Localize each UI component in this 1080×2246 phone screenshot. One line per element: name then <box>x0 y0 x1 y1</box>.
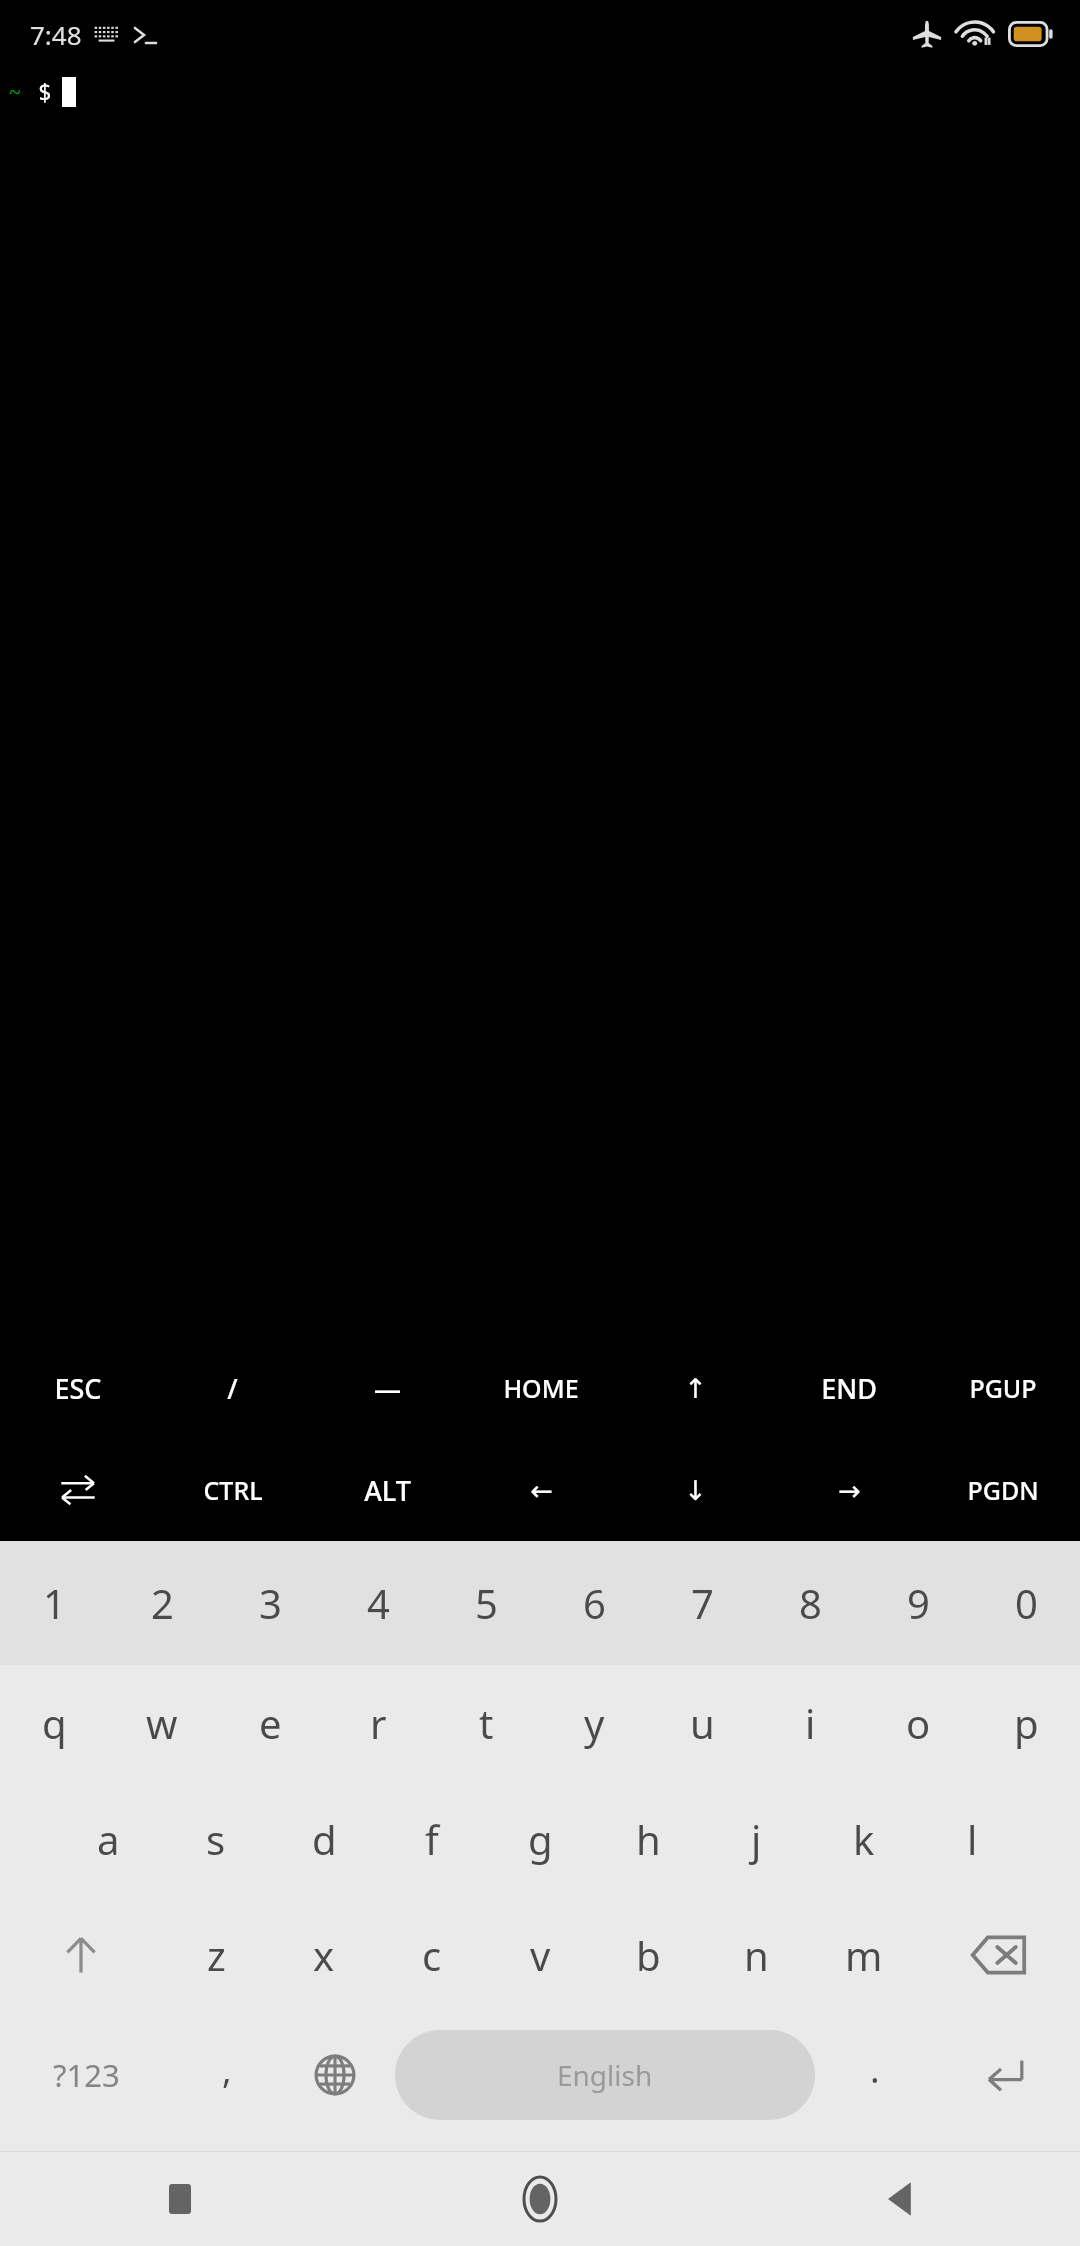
staticText: d <box>312 1812 337 1866</box>
staticText: ← <box>530 1475 553 1506</box>
button[interactable]: y <box>540 1665 648 1781</box>
button[interactable]: u <box>648 1665 756 1781</box>
button[interactable]: n <box>702 1897 810 2013</box>
button[interactable]: 0 <box>972 1541 1080 1665</box>
staticText: 4 <box>367 1576 390 1630</box>
staticText: 9 <box>907 1576 930 1630</box>
button[interactable]: a <box>54 1781 162 1897</box>
button[interactable]: s <box>162 1781 270 1897</box>
button[interactable]: English <box>395 2030 815 2120</box>
staticText: END <box>821 1370 877 1407</box>
button[interactable]: r <box>324 1665 432 1781</box>
button[interactable]: ?123 <box>0 2013 173 2137</box>
button[interactable]: — <box>310 1337 464 1439</box>
button[interactable]: f <box>378 1781 486 1897</box>
other: Tab <box>59 1473 97 1507</box>
button[interactable]: ↓ <box>618 1439 772 1541</box>
button[interactable]: k <box>810 1781 918 1897</box>
button[interactable]: Back <box>720 2152 1080 2246</box>
button[interactable]: 8 <box>756 1541 864 1665</box>
button[interactable]: ← <box>464 1439 618 1541</box>
button[interactable]: ↑ <box>618 1337 772 1439</box>
button[interactable]: 7 <box>648 1541 756 1665</box>
button[interactable]: Change language <box>281 2013 389 2137</box>
staticText: l <box>967 1812 978 1866</box>
staticText: 1 <box>43 1576 66 1630</box>
button[interactable]: 1 <box>0 1541 108 1665</box>
staticText: p <box>1014 1696 1039 1750</box>
button[interactable]: Tab <box>0 1439 155 1541</box>
staticText: u <box>690 1696 715 1750</box>
staticText: PGUP <box>969 1371 1037 1405</box>
button[interactable]: v <box>486 1897 594 2013</box>
button[interactable]: ALT <box>310 1439 464 1541</box>
button[interactable]: i <box>756 1665 864 1781</box>
button[interactable]: j <box>702 1781 810 1897</box>
button[interactable]: . <box>821 2013 929 2137</box>
staticText: 0 <box>1015 1576 1038 1630</box>
button[interactable]: p <box>972 1665 1080 1781</box>
button[interactable]: 2 <box>108 1541 216 1665</box>
staticText: CTRL <box>203 1473 263 1507</box>
button[interactable]: b <box>594 1897 702 2013</box>
staticText: 6 <box>583 1576 606 1630</box>
button[interactable]: → <box>772 1439 926 1541</box>
staticText: 7:48 <box>30 17 82 52</box>
button[interactable]: / <box>155 1337 310 1439</box>
button[interactable]: x <box>270 1897 378 2013</box>
button[interactable]: Backspace <box>918 1897 1080 2013</box>
button[interactable]: Recent apps <box>0 2152 360 2246</box>
staticText: 5 <box>475 1576 498 1630</box>
button[interactable]: CTRL <box>155 1439 310 1541</box>
button[interactable]: 4 <box>324 1541 432 1665</box>
staticText: / <box>227 1370 238 1407</box>
staticText: e <box>259 1696 282 1750</box>
staticText: w <box>146 1696 178 1750</box>
staticText: — <box>374 1370 401 1407</box>
button[interactable]: END <box>772 1337 926 1439</box>
button[interactable]: o <box>864 1665 972 1781</box>
staticText: i <box>805 1696 816 1750</box>
button[interactable]: HOME <box>464 1337 618 1439</box>
staticText: m <box>845 1928 883 1982</box>
button[interactable]: m <box>810 1897 918 2013</box>
staticText: x <box>313 1928 335 1982</box>
staticText: c <box>422 1928 442 1982</box>
staticText: a <box>97 1812 120 1866</box>
staticText: v <box>530 1928 551 1982</box>
button[interactable]: Shift <box>0 1897 162 2013</box>
button[interactable]: 9 <box>864 1541 972 1665</box>
staticText: → <box>838 1475 861 1506</box>
staticText: ALT <box>364 1472 411 1509</box>
button[interactable]: PGDN <box>926 1439 1080 1541</box>
button[interactable]: Home <box>360 2152 720 2246</box>
button[interactable]: Enter <box>929 2013 1080 2137</box>
staticText: ESC <box>54 1370 102 1407</box>
button[interactable]: 6 <box>540 1541 648 1665</box>
staticText: ↓ <box>684 1475 707 1506</box>
staticText: . <box>870 2045 880 2094</box>
staticText: ↑ <box>684 1373 707 1404</box>
button[interactable]: w <box>108 1665 216 1781</box>
staticText: j <box>751 1812 762 1866</box>
button[interactable]: q <box>0 1665 108 1781</box>
staticText: b <box>636 1928 661 1982</box>
button[interactable]: t <box>432 1665 540 1781</box>
button[interactable]: h <box>594 1781 702 1897</box>
button[interactable]: z <box>162 1897 270 2013</box>
button[interactable]: , <box>173 2013 281 2137</box>
button[interactable]: ESC <box>0 1337 155 1439</box>
button[interactable]: g <box>486 1781 594 1897</box>
button[interactable]: PGUP <box>926 1337 1080 1439</box>
staticText: k <box>853 1812 875 1866</box>
staticText: t <box>479 1696 494 1750</box>
button[interactable]: 3 <box>216 1541 324 1665</box>
button[interactable]: e <box>216 1665 324 1781</box>
staticText: o <box>906 1696 931 1750</box>
button[interactable]: d <box>270 1781 378 1897</box>
staticText: PGDN <box>967 1473 1039 1507</box>
button[interactable]: 5 <box>432 1541 540 1665</box>
button[interactable]: l <box>918 1781 1026 1897</box>
button[interactable]: c <box>378 1897 486 2013</box>
staticText: g <box>528 1812 553 1866</box>
